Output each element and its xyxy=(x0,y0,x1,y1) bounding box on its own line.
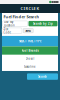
button[interactable]: Search by Zip xyxy=(28,21,57,26)
staticText: Use My Location xyxy=(4,20,15,27)
staticText: SELECT FUEL TYPE xyxy=(19,39,41,43)
staticText: SEND xyxy=(25,29,31,32)
button[interactable]: Zip Code xyxy=(2,28,22,33)
staticText: Fuel Finder Search xyxy=(3,14,39,19)
staticText: Fuel Brands xyxy=(21,49,38,52)
button[interactable]: SEND xyxy=(23,28,33,33)
staticText: Search by Zip xyxy=(33,22,53,25)
button[interactable]: Search xyxy=(27,73,58,80)
button[interactable]: SELECT FUEL TYPE xyxy=(2,36,58,46)
button[interactable]: Diesel xyxy=(2,55,58,63)
staticText: Diesel xyxy=(25,57,34,60)
button[interactable]: Gasoline xyxy=(2,63,58,71)
staticText: Zip Code xyxy=(3,27,11,34)
button[interactable]: Fuel Brands xyxy=(2,46,58,55)
staticText: Gasoline xyxy=(24,65,36,68)
staticText: Search xyxy=(38,75,47,78)
staticText: CIRCLE K xyxy=(20,6,39,11)
button[interactable]: Use My Location xyxy=(2,21,27,26)
